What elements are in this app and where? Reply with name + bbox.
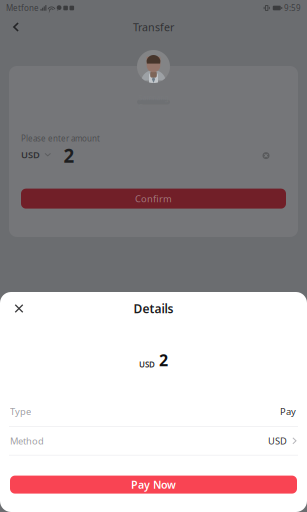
button[interactable]: Back bbox=[3, 16, 29, 38]
staticText: Details bbox=[133, 300, 173, 316]
staticText: 2 bbox=[159, 349, 168, 371]
button[interactable]: Pay Now bbox=[10, 476, 297, 494]
button[interactable]: Type bbox=[0, 397, 307, 426]
button[interactable]: Close bbox=[7, 296, 31, 320]
staticText: USD bbox=[21, 148, 40, 161]
staticText: Type bbox=[10, 405, 31, 418]
staticText: USD bbox=[139, 359, 155, 370]
staticText: 2 bbox=[63, 143, 74, 168]
staticText: Method bbox=[10, 435, 44, 447]
staticText: Transfer bbox=[133, 20, 174, 34]
staticText: Metfone bbox=[6, 3, 39, 13]
staticText: Confirm bbox=[135, 192, 172, 205]
staticText: USD bbox=[268, 435, 287, 447]
button[interactable]: Method bbox=[0, 427, 307, 455]
button[interactable]: Clear amount bbox=[258, 148, 274, 164]
staticText: Pay bbox=[280, 405, 296, 418]
staticText: 9:59 bbox=[284, 3, 301, 13]
staticText: Pay Now bbox=[131, 477, 176, 492]
button[interactable]: Confirm bbox=[21, 189, 286, 209]
staticText: Please enter amount bbox=[21, 133, 100, 144]
